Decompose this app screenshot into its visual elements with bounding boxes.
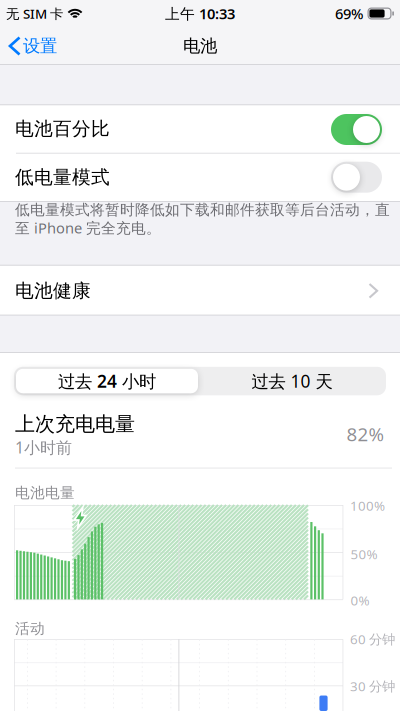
staticText: 60 分钟 [350, 630, 395, 648]
staticText: 上次充电电量 [15, 412, 135, 436]
staticText: 无 SIM 卡 [6, 5, 63, 22]
staticText: 82% [346, 422, 384, 446]
staticText: 过去 10 天 [251, 369, 332, 392]
staticText: 100% [350, 497, 385, 514]
staticText: 30 分钟 [350, 677, 395, 695]
button[interactable]: 电池百分比 [331, 114, 382, 145]
staticText: 至 iPhone 完全充电。 [15, 218, 161, 238]
staticText: 0% [350, 591, 369, 609]
staticText: 电池健康 [15, 279, 91, 302]
staticText: 电池百分比 [15, 117, 110, 140]
staticText: 电池电量 [15, 484, 75, 502]
staticText: 50% [350, 545, 377, 563]
staticText: 过去 24 小时 [58, 369, 156, 392]
staticText: 1小时前 [15, 437, 72, 458]
staticText: 活动 [15, 619, 45, 637]
staticText: 低电量模式将暂时降低如下载和邮件获取等后台活动，直 [15, 201, 390, 219]
button[interactable]: 低电量模式 [331, 162, 382, 193]
button[interactable]: 过去24小时 [16, 369, 198, 393]
staticText: 上午 10:33 [165, 4, 235, 23]
button[interactable]: 设置 [0, 31, 70, 61]
button[interactable]: 电池健康 [0, 265, 400, 314]
staticText: 设置 [23, 35, 57, 57]
button[interactable]: 过去 10 天 [212, 366, 372, 396]
staticText: 低电量模式 [15, 166, 110, 189]
staticText: 电池 [183, 35, 217, 57]
staticText: 69% [335, 4, 363, 23]
